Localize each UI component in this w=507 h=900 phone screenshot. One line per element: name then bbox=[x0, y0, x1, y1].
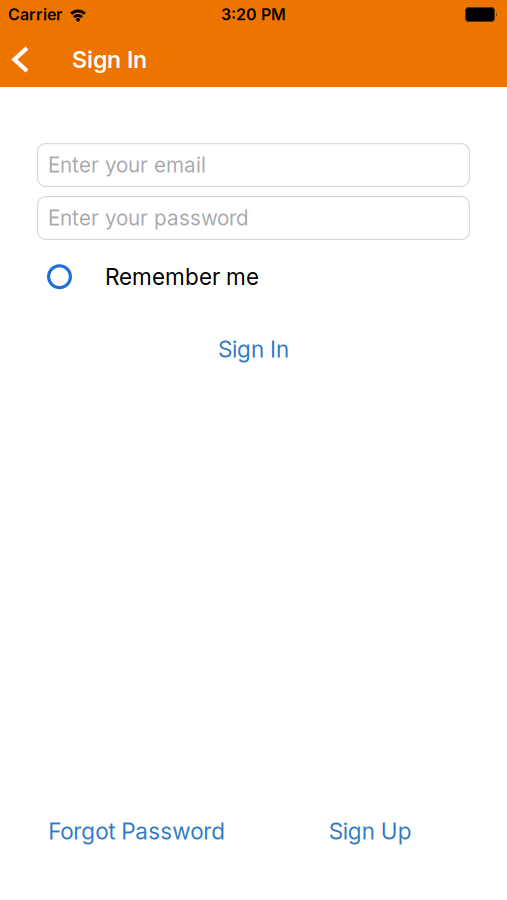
staticText: 3:20 PM bbox=[221, 5, 286, 24]
staticText: Sign In bbox=[218, 335, 289, 363]
staticText: Enter your email bbox=[48, 152, 206, 177]
staticText: Sign Up bbox=[329, 818, 412, 845]
button[interactable]: Sign Up bbox=[253, 818, 487, 845]
staticText: Remember me bbox=[105, 263, 259, 290]
staticText: Enter your password bbox=[48, 205, 249, 230]
button[interactable]: Back bbox=[0, 32, 51, 87]
button[interactable]: Forgot Password bbox=[20, 818, 253, 845]
button[interactable]: Sign In bbox=[218, 290, 289, 363]
staticText: Forgot Password bbox=[48, 818, 225, 845]
button[interactable]: Remember me bbox=[47, 264, 72, 289]
staticText: Carrier bbox=[8, 5, 62, 24]
staticText: Sign In bbox=[72, 45, 147, 74]
